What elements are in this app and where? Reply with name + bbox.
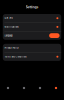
button[interactable]: Privacy Policy (3, 44, 61, 52)
button[interactable]: Search (16, 83, 32, 93)
button[interactable]: Notifications (3, 23, 61, 31)
staticText: Settings (25, 5, 38, 9)
staticText: Language (4, 34, 12, 37)
staticText: Notifications (4, 25, 18, 28)
button[interactable]: Language (3, 31, 61, 40)
button[interactable]: Terms and Conditions (3, 52, 61, 61)
button[interactable]: Library (32, 83, 48, 93)
button[interactable]: Home (0, 83, 16, 93)
staticText: Get Pro (4, 17, 12, 19)
button[interactable]: Get Pro (3, 14, 61, 22)
button[interactable]: Settings (48, 83, 64, 93)
staticText: Terms and Conditions (4, 55, 26, 58)
staticText: Privacy Policy (4, 47, 18, 49)
